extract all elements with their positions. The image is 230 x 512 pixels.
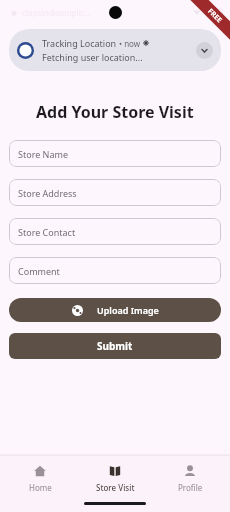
- staticText: Submit: [97, 339, 133, 353]
- staticText: Store Contact: [18, 226, 76, 238]
- button[interactable]: Home: [5, 464, 75, 493]
- button[interactable]: Upload Image: [9, 298, 221, 322]
- button[interactable]: Comment: [9, 257, 221, 284]
- staticText: Add Your Store Visit: [36, 101, 194, 123]
- staticText: Tracking Location: [42, 37, 117, 49]
- staticText: FREE: [205, 7, 225, 26]
- staticText: Upload Image: [97, 304, 159, 316]
- button[interactable]: Submit: [9, 333, 221, 359]
- button[interactable]: Store Contact: [9, 218, 221, 245]
- button[interactable]: Tracking Location: [9, 29, 221, 71]
- staticText: Store Address: [18, 187, 77, 199]
- button[interactable]: Expand notification: [196, 42, 213, 59]
- button[interactable]: Store Address: [9, 179, 221, 206]
- staticText: Profile: [178, 482, 203, 493]
- staticText: Store Name: [18, 148, 68, 160]
- staticText: • now: [117, 38, 143, 49]
- staticText: clapsindiaemplo...: [22, 7, 90, 18]
- button[interactable]: Profile: [155, 464, 225, 493]
- button[interactable]: Store Visit: [80, 464, 150, 493]
- staticText: Home: [29, 482, 52, 493]
- staticText: Store Visit: [96, 482, 135, 493]
- staticText: Fetching user location...: [42, 51, 143, 63]
- staticText: Comment: [18, 265, 60, 277]
- button[interactable]: Store Name: [9, 140, 221, 167]
